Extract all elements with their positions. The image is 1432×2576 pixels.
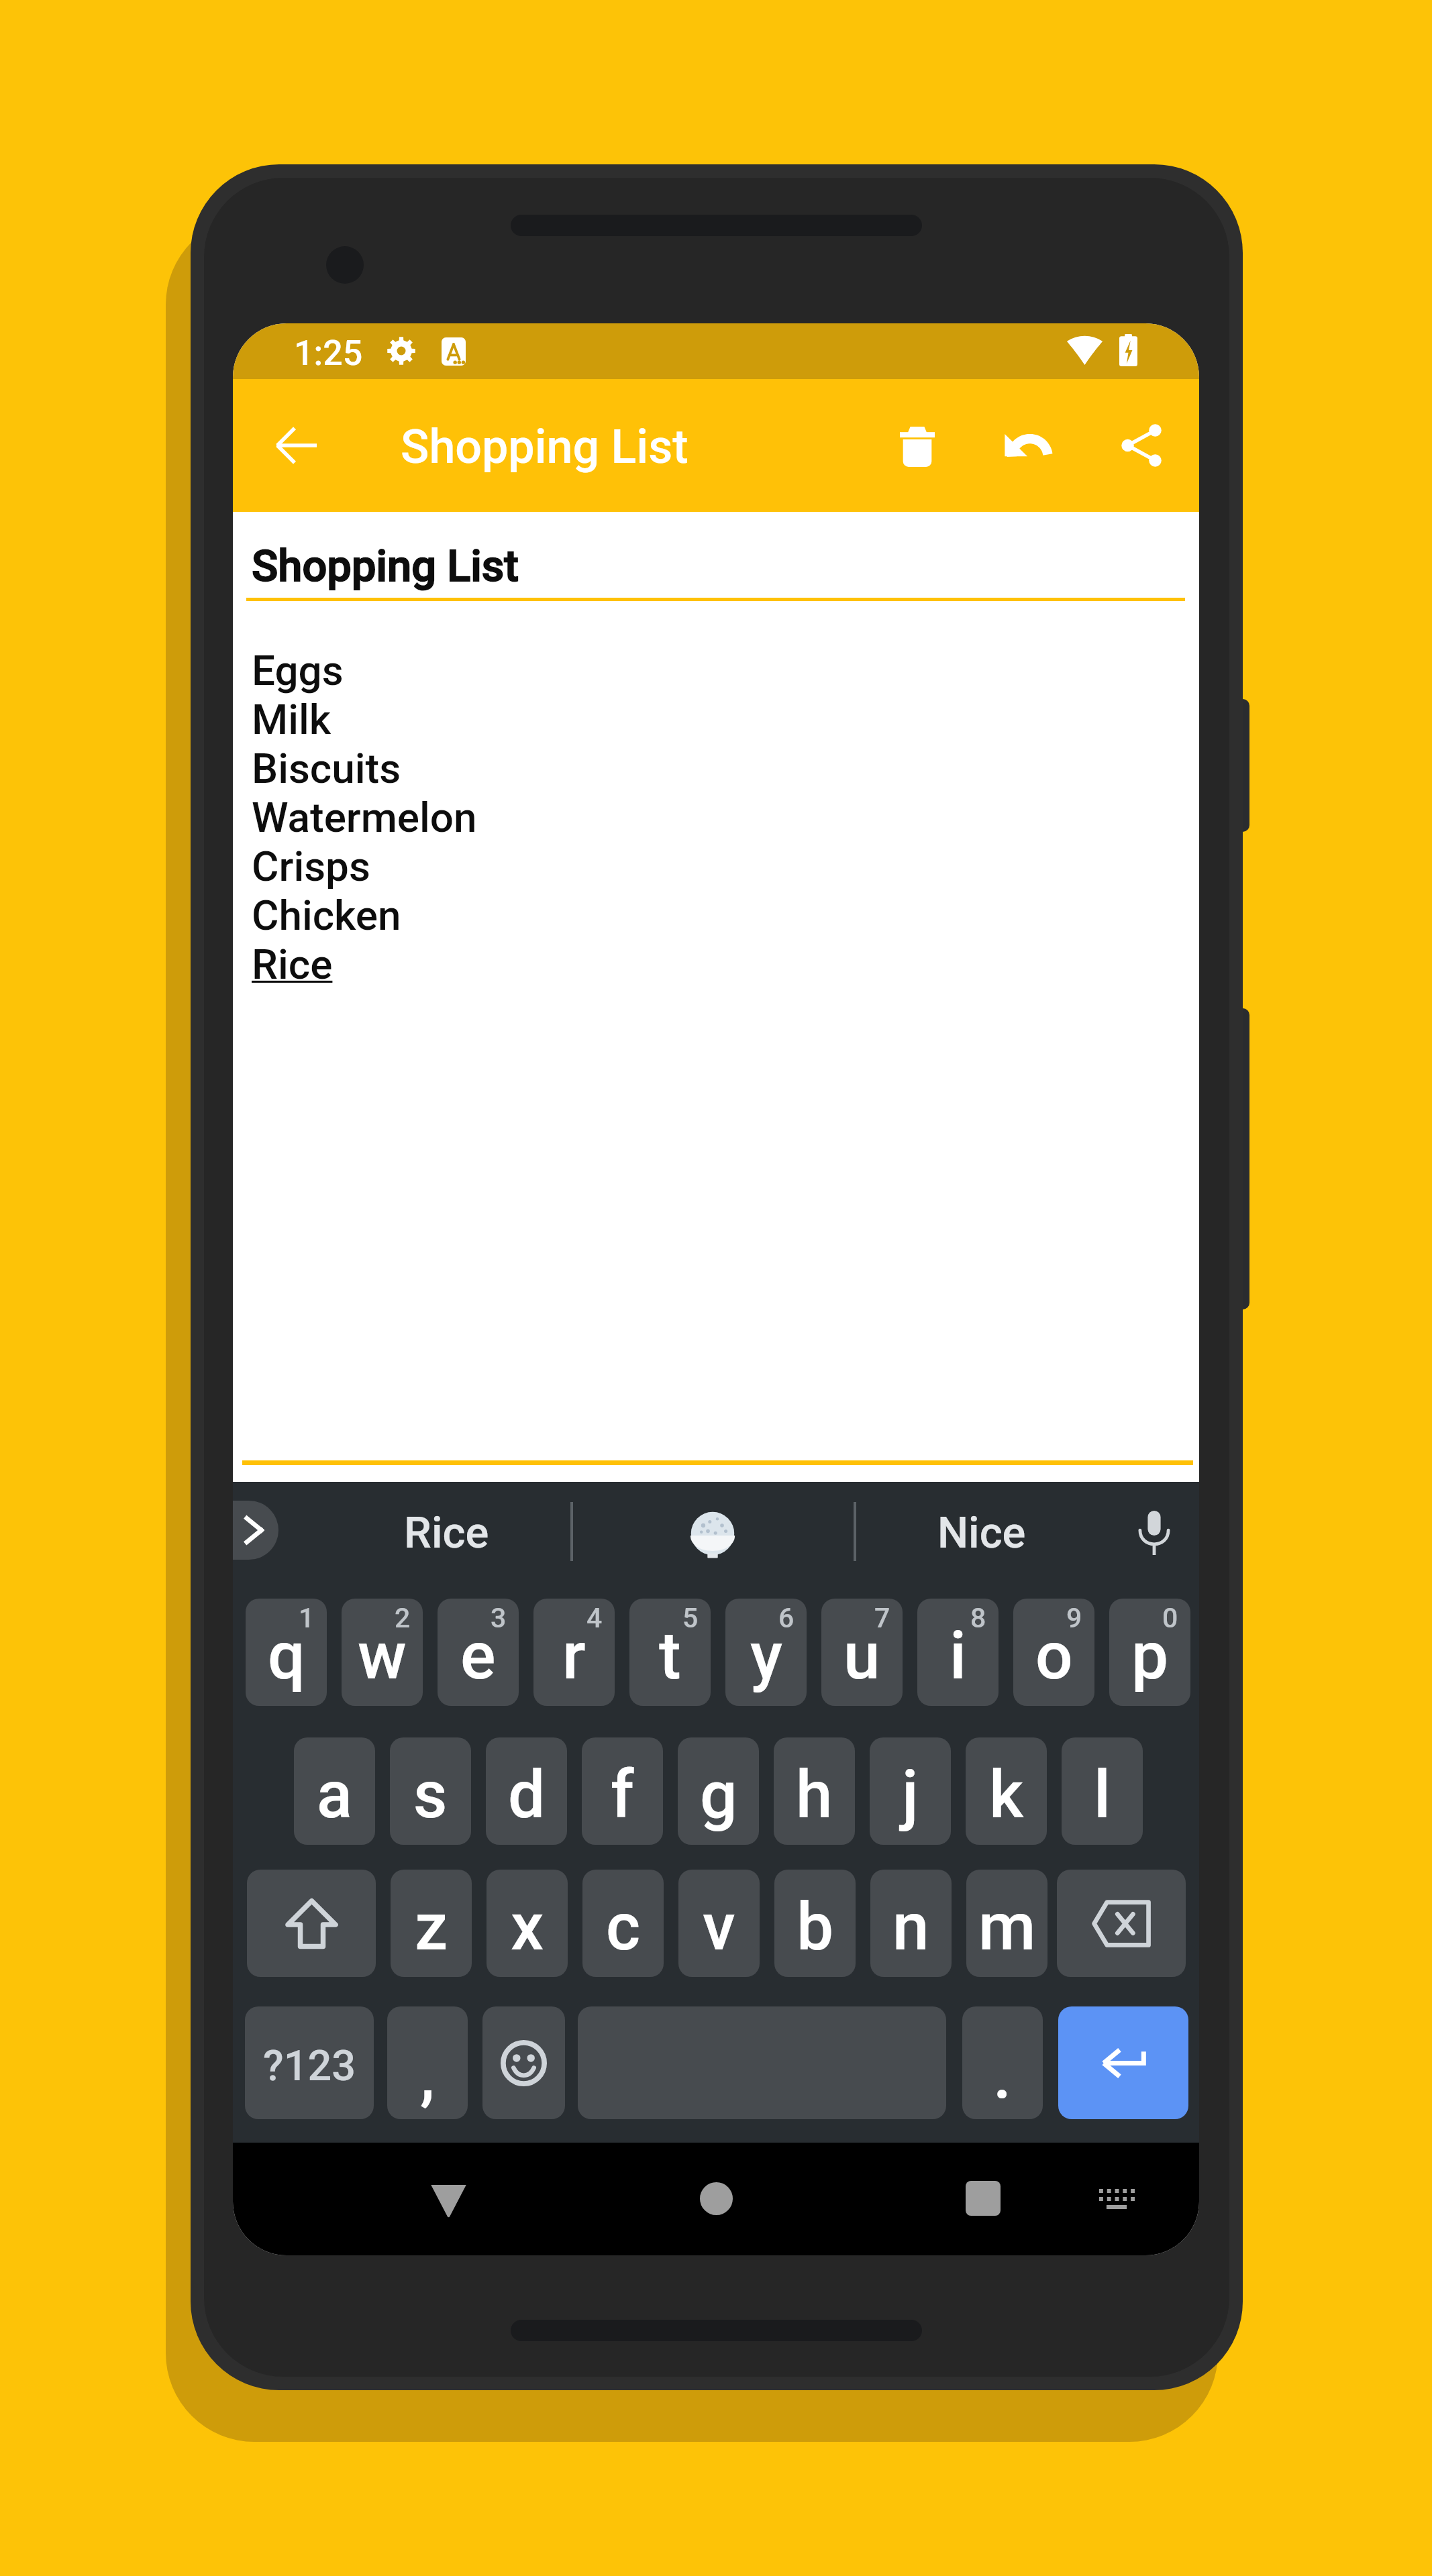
button[interactable]: l: [1062, 1737, 1143, 1845]
button[interactable]: r: [533, 1599, 615, 1706]
staticText: Shopping List: [252, 541, 519, 592]
button[interactable]: Backspace: [1057, 1870, 1186, 1977]
staticText: Watermelon: [252, 793, 477, 842]
button[interactable]: Rice: [299, 1494, 594, 1572]
button[interactable]: ,: [387, 2006, 468, 2119]
button[interactable]: c: [582, 1870, 664, 1977]
button[interactable]: ?123: [245, 2006, 374, 2119]
staticText: 0: [1162, 1602, 1178, 1634]
button[interactable]: z: [391, 1870, 472, 1977]
button[interactable]: .: [962, 2006, 1043, 2119]
button[interactable]: j: [870, 1737, 951, 1845]
staticText: y: [750, 1617, 782, 1695]
button[interactable]: Share: [1088, 379, 1195, 512]
staticText: p: [1131, 1617, 1169, 1695]
button[interactable]: Hide keyboard: [399, 2143, 498, 2255]
button[interactable]: s: [390, 1737, 471, 1845]
staticText: 8: [970, 1602, 986, 1634]
staticText: n: [892, 1888, 929, 1966]
button[interactable]: Switch keyboard: [1067, 2143, 1166, 2255]
staticText: c: [606, 1888, 641, 1966]
button[interactable]: o: [1013, 1599, 1094, 1706]
staticText: 9: [1066, 1602, 1082, 1634]
button[interactable]: Emoji: [482, 2006, 565, 2119]
staticText: x: [511, 1888, 544, 1966]
staticText: b: [797, 1888, 834, 1966]
button[interactable]: d: [486, 1737, 567, 1845]
staticText: Shopping List: [401, 419, 688, 474]
staticText: 1: [299, 1602, 315, 1634]
button[interactable]: q: [246, 1599, 327, 1706]
button[interactable]: x: [487, 1870, 568, 1977]
staticText: Crisps: [252, 842, 370, 891]
button[interactable]: Voice input: [1117, 1499, 1191, 1566]
button[interactable]: k: [966, 1737, 1047, 1845]
staticText: v: [703, 1888, 735, 1966]
button[interactable]: Undo: [976, 379, 1083, 512]
staticText: Nice: [937, 1507, 1026, 1558]
staticText: ,: [420, 2037, 435, 2114]
button[interactable]: p: [1109, 1599, 1190, 1706]
staticText: 6: [778, 1602, 795, 1634]
button[interactable]: Nice: [834, 1494, 1129, 1572]
button[interactable]: i: [917, 1599, 999, 1706]
button[interactable]: u: [821, 1599, 903, 1706]
staticText: 1:25: [294, 333, 363, 374]
staticText: z: [415, 1888, 448, 1966]
button[interactable]: h: [774, 1737, 855, 1845]
staticText: u: [843, 1617, 880, 1695]
staticText: 4: [586, 1602, 603, 1634]
button[interactable]: m: [966, 1870, 1047, 1977]
button[interactable]: n: [870, 1870, 952, 1977]
button[interactable]: Home: [666, 2143, 766, 2255]
staticText: t: [659, 1617, 681, 1695]
button[interactable]: Shopping List: [233, 512, 1199, 1482]
staticText: d: [508, 1756, 546, 1833]
staticText: r: [562, 1617, 586, 1695]
button[interactable]: Delete: [864, 379, 971, 512]
staticText: m: [978, 1888, 1036, 1966]
staticText: s: [413, 1756, 448, 1833]
staticText: Eggs: [252, 646, 344, 695]
staticText: e: [460, 1617, 496, 1695]
staticText: Chicken: [252, 891, 401, 940]
button[interactable]: Back: [242, 379, 350, 512]
button[interactable]: e: [438, 1599, 519, 1706]
staticText: q: [268, 1617, 305, 1695]
staticText: Milk: [252, 695, 331, 744]
staticText: o: [1035, 1617, 1073, 1695]
staticText: i: [950, 1617, 966, 1695]
staticText: h: [796, 1756, 833, 1833]
staticText: j: [902, 1756, 919, 1833]
staticText: l: [1094, 1756, 1111, 1833]
button[interactable]: v: [678, 1870, 760, 1977]
staticText: Rice: [404, 1507, 489, 1558]
button[interactable]: a: [294, 1737, 375, 1845]
button[interactable]: f: [582, 1737, 663, 1845]
button[interactable]: Shift: [247, 1870, 376, 1977]
button[interactable]: Shopping List: [401, 379, 830, 512]
staticText: ?123: [263, 2041, 356, 2091]
staticText: Biscuits: [252, 744, 401, 793]
staticText: g: [700, 1756, 737, 1833]
button[interactable]: w: [342, 1599, 423, 1706]
button[interactable]: t: [629, 1599, 711, 1706]
staticText: Rice: [252, 940, 333, 989]
staticText: 5: [682, 1602, 699, 1634]
staticText: a: [317, 1756, 352, 1833]
button[interactable]: Recents: [933, 2143, 1033, 2255]
staticText: w: [358, 1617, 407, 1695]
staticText: k: [989, 1756, 1024, 1833]
staticText: 7: [874, 1602, 890, 1634]
button[interactable]: g: [678, 1737, 759, 1845]
staticText: 3: [491, 1602, 507, 1634]
staticText: .: [993, 2037, 1012, 2114]
button[interactable]: y: [725, 1599, 807, 1706]
button[interactable]: b: [774, 1870, 856, 1977]
staticText: 2: [395, 1602, 411, 1634]
button[interactable]: Enter: [1058, 2006, 1188, 2119]
staticText: f: [611, 1756, 634, 1833]
button[interactable]: More suggestions: [233, 1501, 278, 1560]
